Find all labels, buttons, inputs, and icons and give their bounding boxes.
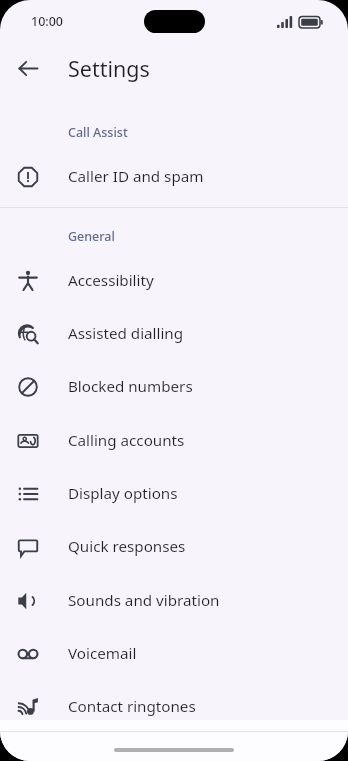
staticText: Accessibility <box>68 270 154 291</box>
button[interactable]: Quick responses <box>0 520 348 573</box>
staticText: Display options <box>68 483 178 504</box>
button[interactable]: Caller ID and spam <box>0 150 348 203</box>
button[interactable]: Display options <box>0 467 348 520</box>
button[interactable]: Back <box>8 48 48 88</box>
staticText: Contact ringtones <box>68 696 196 717</box>
button[interactable]: Voicemail <box>0 627 348 680</box>
button[interactable]: Contact ringtones <box>0 680 348 733</box>
staticText: Call Assist <box>68 124 128 141</box>
staticText: General <box>68 228 115 245</box>
staticText: Assisted dialling <box>68 323 184 344</box>
staticText: Sounds and vibration <box>68 590 220 611</box>
button[interactable]: Blocked numbers <box>0 360 348 413</box>
staticText: 10:00 <box>31 13 64 30</box>
staticText: Voicemail <box>68 643 137 664</box>
staticText: Settings <box>68 54 150 83</box>
staticText: Quick responses <box>68 536 186 557</box>
button[interactable]: Accessibility <box>0 254 348 307</box>
button[interactable]: Assisted dialling <box>0 307 348 360</box>
staticText: Calling accounts <box>68 430 185 451</box>
button[interactable]: Calling accounts <box>0 414 348 467</box>
staticText: Caller ID and spam <box>68 166 204 187</box>
staticText: Blocked numbers <box>68 376 193 397</box>
button[interactable]: Sounds and vibration <box>0 574 348 627</box>
